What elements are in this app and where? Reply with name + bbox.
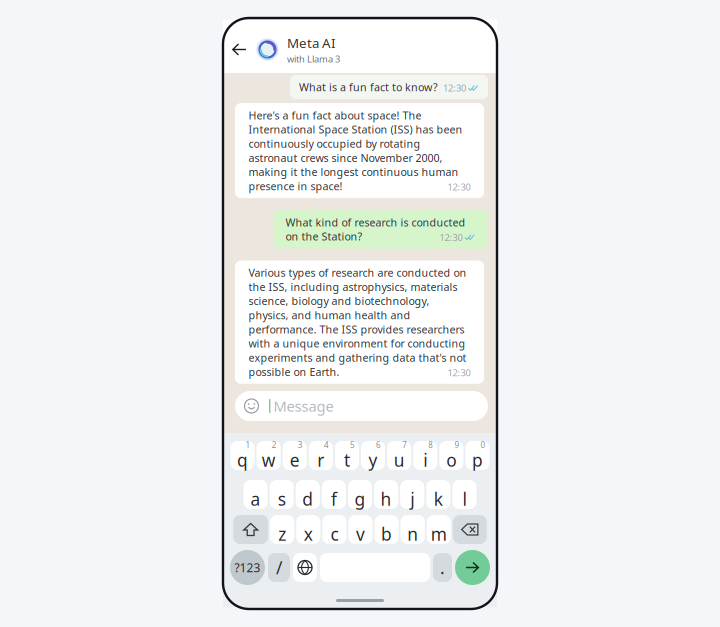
button[interactable] [296, 515, 320, 544]
staticText [393, 514, 395, 524]
button[interactable]: Period [433, 553, 452, 582]
staticText: k [434, 487, 443, 510]
staticText: e [290, 448, 300, 471]
button[interactable] [401, 515, 425, 544]
staticText [419, 514, 421, 524]
button[interactable] [348, 480, 372, 509]
staticText: f [331, 487, 337, 510]
staticText [288, 479, 290, 489]
button[interactable]: 5 [335, 441, 359, 470]
staticText: 6 [376, 440, 381, 450]
staticText: 12:30 [447, 366, 470, 379]
staticText [444, 479, 446, 489]
button[interactable]: 7 [387, 441, 411, 470]
staticText: 7 [402, 440, 407, 450]
staticText: i [423, 448, 427, 471]
staticText: / [276, 556, 282, 579]
button[interactable] [322, 480, 346, 509]
staticText: 12:30 [447, 181, 470, 193]
staticText: 4 [324, 440, 329, 450]
staticText: o [446, 448, 456, 471]
staticText [340, 514, 342, 524]
staticText: 8 [428, 440, 433, 450]
button[interactable]: Numbers and symbols [230, 550, 265, 585]
staticText: 3 [298, 440, 303, 450]
staticText: r [317, 448, 324, 471]
staticText: s [278, 487, 286, 510]
staticText: j [410, 487, 414, 510]
staticText: d [302, 487, 313, 510]
button[interactable]: Shift [233, 515, 268, 544]
button[interactable] [426, 480, 450, 509]
staticText: l [462, 487, 466, 510]
staticText: b [381, 522, 392, 545]
button[interactable]: 4 [309, 441, 333, 470]
button[interactable] [400, 480, 424, 509]
staticText: with Llama 3 [287, 53, 340, 65]
button[interactable] [322, 515, 346, 544]
button[interactable] [427, 515, 451, 544]
button[interactable]: Back [229, 33, 256, 65]
button[interactable]: 0 [465, 441, 489, 470]
button[interactable] [296, 480, 320, 509]
button[interactable]: Message [235, 391, 488, 421]
button[interactable]: 8 [413, 441, 437, 470]
button[interactable] [348, 515, 373, 544]
button[interactable]: Change language [293, 553, 317, 582]
staticText: v [356, 522, 365, 545]
button[interactable] [452, 480, 476, 509]
staticText: ?123 [234, 559, 260, 575]
staticText [367, 514, 369, 524]
staticText: . [440, 556, 445, 579]
button[interactable] [374, 480, 398, 509]
staticText: z [278, 522, 286, 545]
button[interactable]: 1 [230, 441, 255, 470]
staticText: w [262, 448, 276, 471]
staticText: x [304, 522, 313, 545]
button[interactable] [270, 515, 294, 544]
staticText: n [407, 522, 418, 545]
staticText: What kind of research is conducted on th… [285, 215, 465, 243]
staticText: 0 [480, 440, 485, 450]
staticText [470, 479, 472, 489]
staticText: 1 [246, 440, 251, 450]
staticText [314, 514, 316, 524]
staticText: 9 [454, 440, 459, 450]
staticText: Here's a fun fact about space! The Inter… [248, 108, 462, 193]
staticText: 12:30 [439, 231, 462, 243]
staticText: Meta AI [287, 34, 336, 52]
button[interactable] [244, 480, 268, 509]
button[interactable]: Slash [268, 553, 290, 582]
staticText [340, 479, 342, 489]
staticText: h [381, 487, 392, 510]
staticText: u [394, 448, 405, 471]
button[interactable]: Send [455, 550, 490, 585]
staticText: t [344, 448, 350, 471]
button[interactable] [270, 480, 294, 509]
staticText: Various types of research are conducted … [248, 265, 466, 379]
button[interactable]: Delete [453, 515, 487, 544]
staticText: g [354, 487, 365, 510]
button[interactable] [375, 515, 399, 544]
staticText [418, 479, 420, 489]
staticText: 5 [350, 440, 355, 450]
staticText: q [237, 448, 248, 471]
button[interactable]: 3 [283, 441, 307, 470]
staticText: a [251, 487, 261, 510]
staticText: c [330, 522, 338, 545]
staticText: What is a fun fact to know? [299, 80, 438, 94]
staticText [366, 479, 368, 489]
button[interactable]: 2 [257, 441, 281, 470]
staticText [288, 514, 290, 524]
staticText: p [472, 448, 483, 471]
button[interactable]: 9 [439, 441, 463, 470]
button[interactable]: 6 [361, 441, 385, 470]
staticText: m [431, 522, 447, 545]
staticText: Message [273, 396, 333, 416]
staticText [314, 479, 316, 489]
staticText: 2 [272, 440, 277, 450]
staticText: 12:30 [443, 82, 466, 94]
staticText [262, 479, 264, 489]
staticText: y [369, 448, 378, 471]
